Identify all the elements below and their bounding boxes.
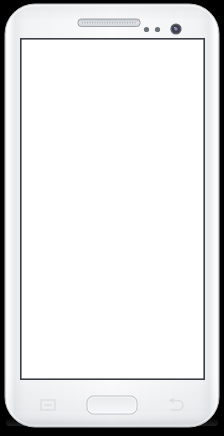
button[interactable]: White smartphone with blank screen (0, 0, 224, 436)
